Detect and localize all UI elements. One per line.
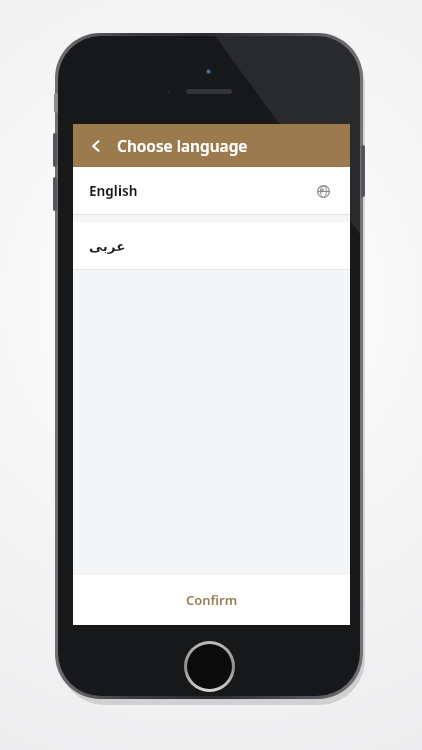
button[interactable]: Confirm [73,575,350,625]
button[interactable]: عربى [73,222,350,270]
staticText: عربى [89,238,126,254]
staticText: Choose language [117,135,248,156]
other: Language globe [312,180,334,202]
staticText: English [89,182,138,200]
staticText: Confirm [186,591,238,609]
button[interactable]: English [73,167,350,215]
button[interactable]: Back [81,131,111,161]
